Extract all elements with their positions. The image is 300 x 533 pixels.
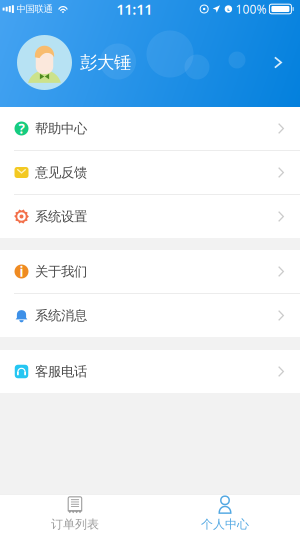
staticText: 意见反馈 xyxy=(35,164,87,181)
button[interactable]: 个人中心 xyxy=(150,495,300,533)
button[interactable]: 订单列表 xyxy=(0,495,150,533)
staticText: i xyxy=(19,263,23,280)
staticText: 帮助中心 xyxy=(35,120,87,137)
button[interactable]: 意见反馈 xyxy=(0,151,300,194)
staticText: 订单列表 xyxy=(51,517,99,532)
staticText: 系统消息 xyxy=(35,307,87,324)
staticText: 客服电话 xyxy=(35,363,87,380)
staticText: 系统设置 xyxy=(35,208,87,225)
staticText: ? xyxy=(18,120,24,137)
button[interactable]: 系统设置 xyxy=(0,195,300,238)
staticText: 彭大锤 xyxy=(80,52,131,73)
button[interactable]: Account details xyxy=(268,50,288,74)
staticText: 关于我们 xyxy=(35,263,87,280)
button[interactable]: ? xyxy=(0,107,300,150)
staticText: 11:11 xyxy=(116,0,152,19)
staticText: 100% xyxy=(235,1,266,17)
staticText: 中国联通 xyxy=(16,3,52,15)
button[interactable]: 客服电话 xyxy=(0,350,300,393)
button[interactable]: i xyxy=(0,250,300,293)
staticText: 个人中心 xyxy=(201,517,249,532)
button[interactable]: 系统消息 xyxy=(0,294,300,337)
